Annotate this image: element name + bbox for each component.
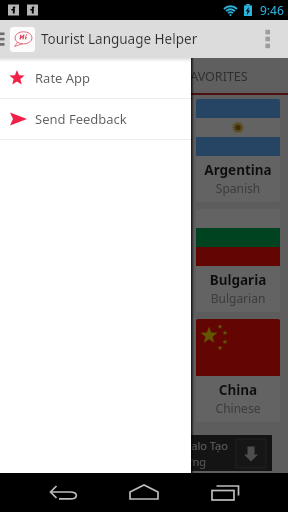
- staticText: Bulgarian: [196, 290, 280, 306]
- button[interactable]: Rate App: [0, 58, 191, 98]
- staticText: China: [196, 381, 280, 399]
- button[interactable]: Send Feedback: [0, 99, 191, 139]
- staticText: ứng: [185, 454, 206, 469]
- staticText: Send Feedback: [35, 110, 127, 128]
- staticText: Tourist Language Helper: [41, 30, 198, 48]
- button[interactable]: More options: [246, 20, 288, 58]
- button[interactable]: China: [196, 319, 280, 422]
- button[interactable]: Bulgaria: [196, 209, 280, 312]
- staticText: Bulgaria: [196, 271, 280, 289]
- button[interactable]: Albania: [100, 99, 184, 202]
- button[interactable]: Download: [236, 439, 266, 468]
- staticText: FAVORITES: [184, 68, 248, 85]
- staticText: Zalo Tạo: [185, 438, 228, 453]
- button[interactable]: Home: [124, 473, 164, 512]
- button[interactable]: FAVORITES: [144, 58, 288, 95]
- button[interactable]: Afghanistan: [4, 99, 88, 202]
- button[interactable]: Back: [44, 473, 84, 512]
- staticText: Spanish: [196, 180, 280, 196]
- button[interactable]: Recents: [205, 473, 245, 512]
- staticText: Argentina: [196, 161, 280, 179]
- button[interactable]: Argentina: [196, 99, 280, 202]
- staticText: ALL: [61, 68, 83, 85]
- button[interactable]: ALL: [0, 58, 144, 95]
- staticText: 9:46: [260, 2, 284, 18]
- button[interactable]: Navigation menu: [0, 20, 9, 58]
- staticText: Chinese: [196, 400, 280, 416]
- staticText: Rate App: [35, 69, 91, 87]
